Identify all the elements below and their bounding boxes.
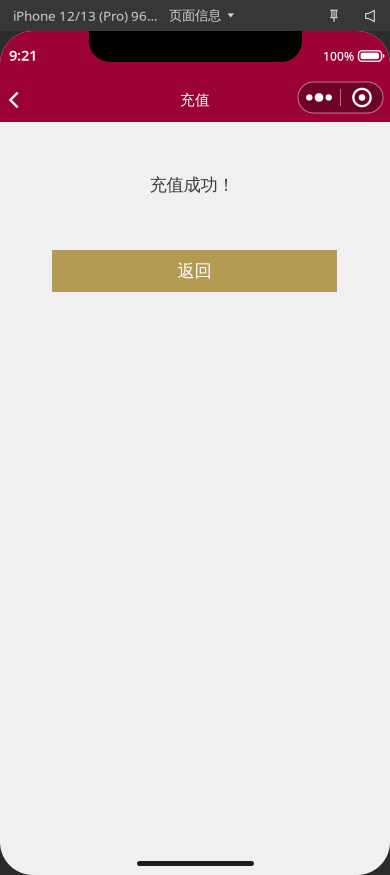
button[interactable]: Back	[0, 78, 38, 122]
staticText: 充值成功！	[149, 174, 234, 196]
button[interactable]: 页面信息	[169, 0, 235, 31]
button[interactable]: 返回	[52, 250, 337, 292]
button[interactable]: Close mini program	[341, 82, 383, 113]
staticText: 充值	[180, 91, 210, 109]
button[interactable]: More options	[298, 82, 340, 113]
button[interactable]: Mute audio	[358, 0, 382, 31]
button[interactable]: Pin window	[322, 0, 346, 31]
staticText: 100%	[323, 48, 354, 64]
staticText: 9:21	[9, 45, 37, 65]
staticText: iPhone 12/13 (Pro) 96…	[13, 7, 158, 24]
staticText: 页面信息	[169, 7, 221, 24]
staticText: 返回	[177, 260, 211, 282]
